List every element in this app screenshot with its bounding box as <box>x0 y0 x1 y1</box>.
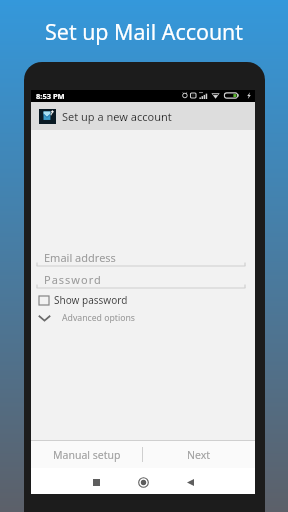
button[interactable]: Back <box>179 471 202 494</box>
staticText: Password <box>44 272 102 287</box>
staticText: Set up a new account <box>62 109 172 124</box>
staticText: 8:53 PM <box>36 91 65 101</box>
staticText: Advanced options <box>62 312 135 324</box>
button[interactable]: Next <box>143 441 255 468</box>
button[interactable]: Recent apps <box>85 471 108 494</box>
staticText: Email address <box>44 250 116 265</box>
staticText: Manual setup <box>53 448 121 462</box>
staticText: Next <box>187 448 211 462</box>
button[interactable]: Home <box>132 471 155 494</box>
button[interactable]: Password <box>31 271 255 291</box>
button[interactable]: Show password <box>36 293 132 307</box>
button[interactable]: Email address <box>31 249 255 269</box>
button[interactable]: Manual setup <box>31 441 142 468</box>
staticText: Show password <box>54 293 128 307</box>
staticText: Set up Mail Account <box>0 17 288 46</box>
button[interactable]: Advanced options <box>37 311 139 325</box>
button[interactable]: Set up a new account <box>31 102 255 130</box>
